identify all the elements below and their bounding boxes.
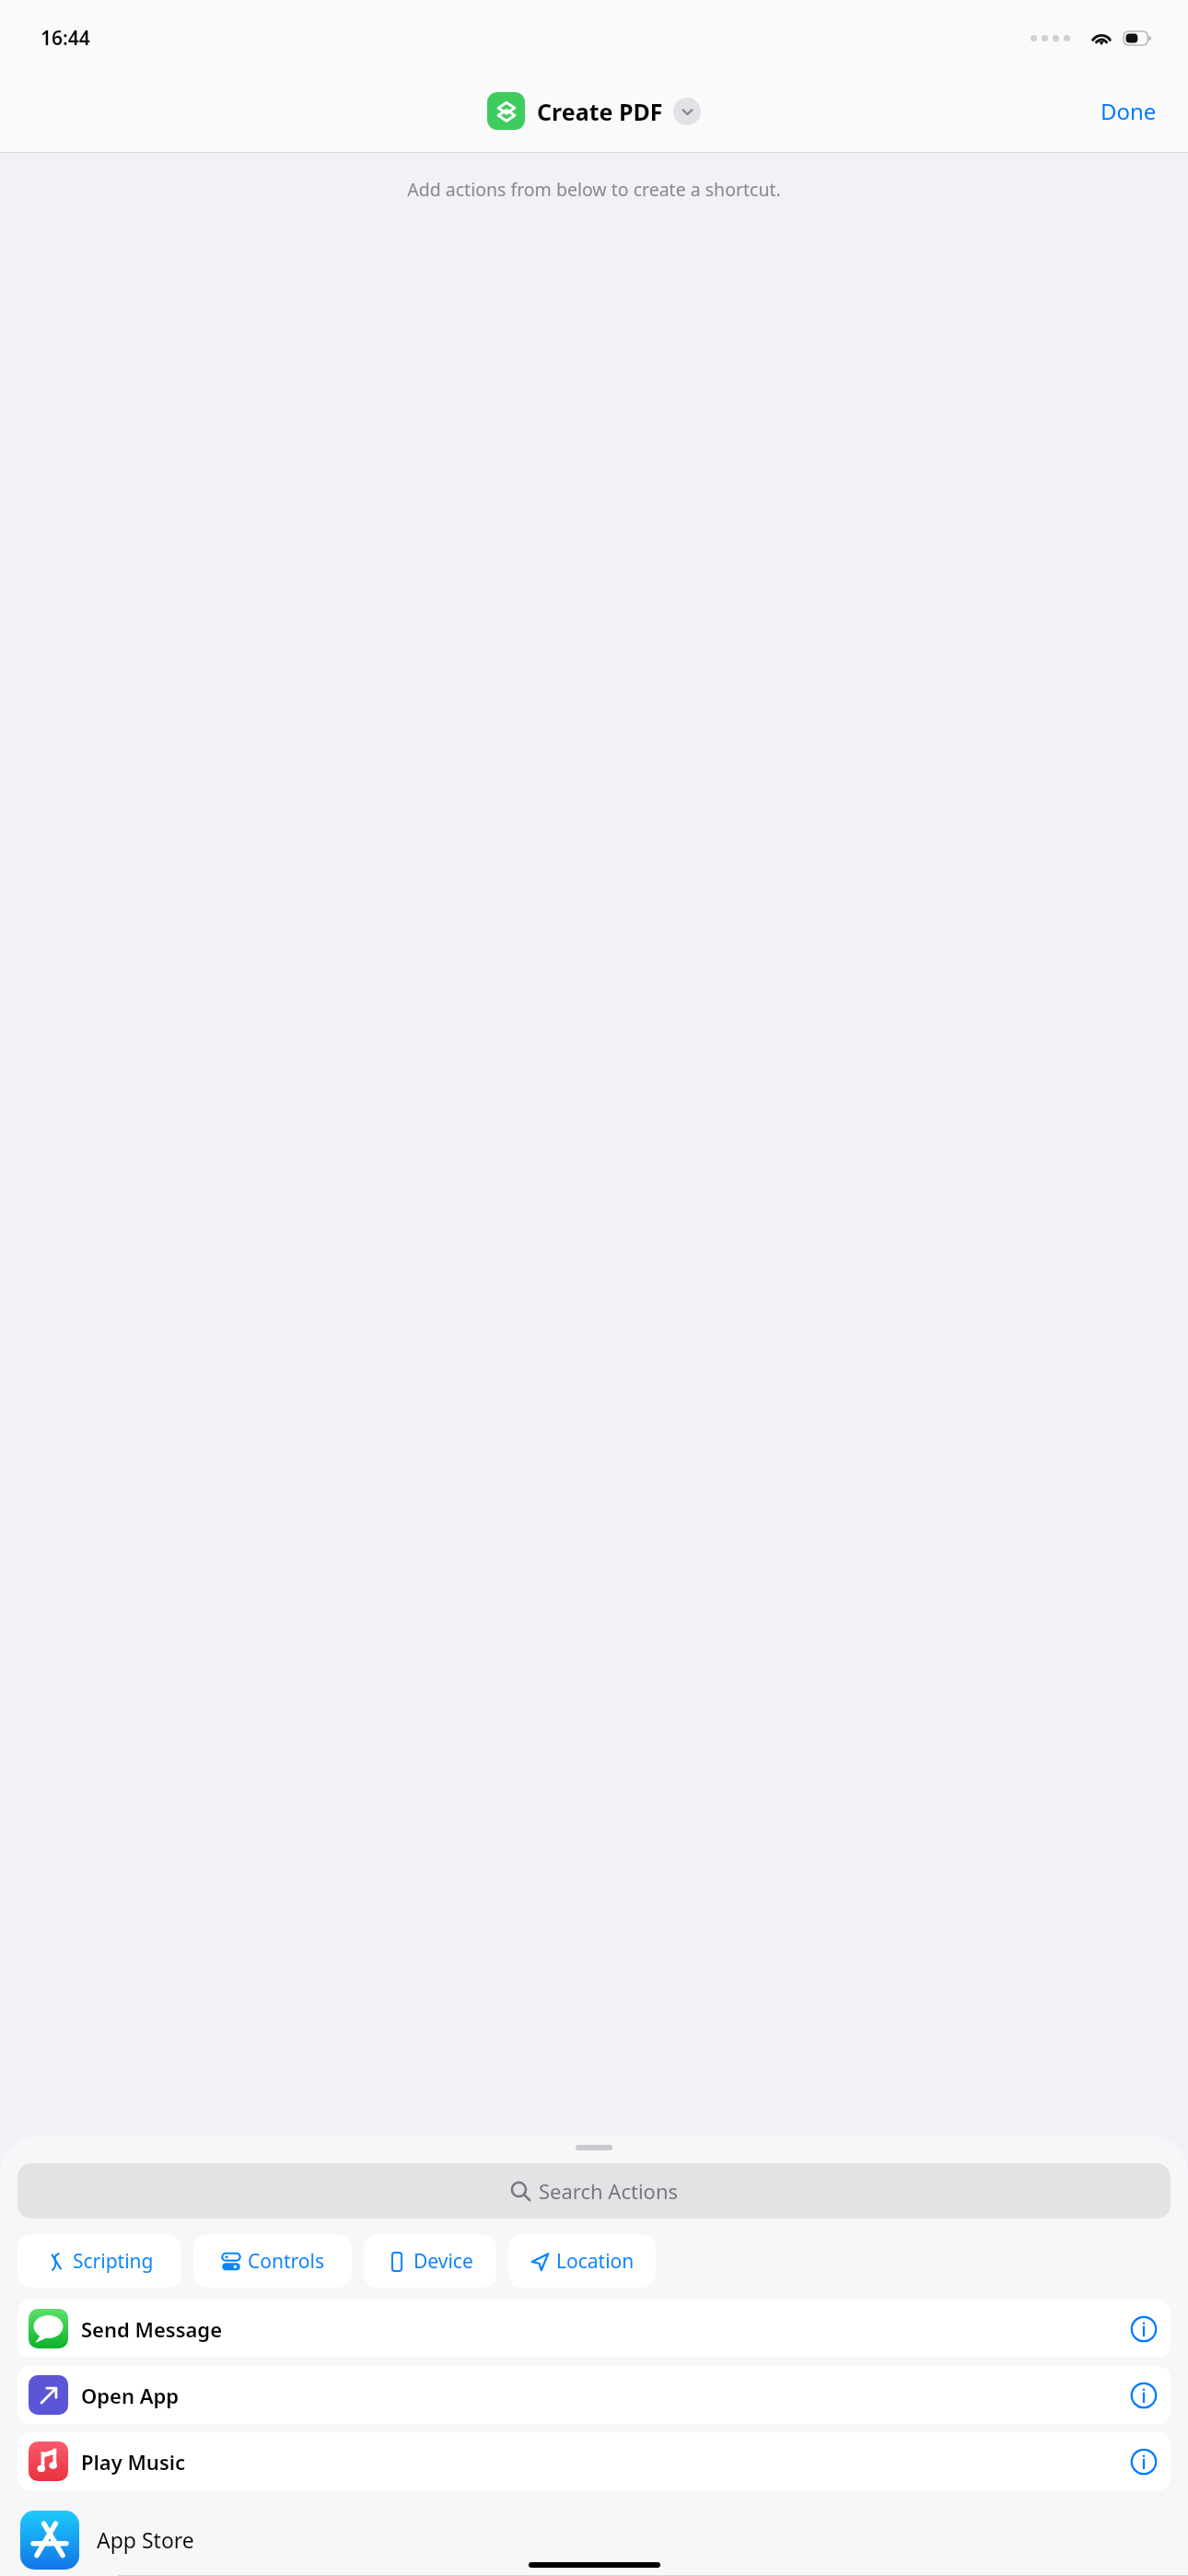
staticText: App Store bbox=[97, 2525, 194, 2554]
staticText: Location bbox=[556, 2248, 635, 2275]
staticText: Open App bbox=[81, 2382, 180, 2409]
button[interactable]: Search Actions bbox=[17, 2163, 1171, 2219]
staticText: Done bbox=[1101, 96, 1157, 126]
button[interactable]: About Send Message bbox=[1128, 2313, 1159, 2345]
button[interactable]: Shortcut options bbox=[673, 98, 701, 125]
button[interactable]: Send Message bbox=[17, 2300, 1171, 2358]
button[interactable]: About Play Music bbox=[1128, 2446, 1159, 2477]
button[interactable]: Controls bbox=[193, 2234, 352, 2288]
staticText: Search Actions bbox=[539, 2177, 679, 2205]
button[interactable]: Location bbox=[508, 2234, 656, 2288]
staticText: Play Music bbox=[81, 2448, 185, 2476]
staticText: Device bbox=[413, 2248, 473, 2275]
staticText: Scripting bbox=[73, 2248, 154, 2275]
button[interactable]: Shortcut icon bbox=[487, 92, 525, 130]
button[interactable]: Scripting bbox=[17, 2234, 181, 2288]
staticText: Send Message bbox=[81, 2315, 223, 2343]
button[interactable]: Open App bbox=[17, 2366, 1171, 2424]
staticText: Add actions from below to create a short… bbox=[22, 177, 1166, 202]
staticText: Create PDF bbox=[537, 96, 663, 127]
staticText: Controls bbox=[248, 2248, 324, 2275]
staticText: 16:44 bbox=[41, 25, 90, 52]
button[interactable]: Done bbox=[1069, 68, 1188, 153]
button[interactable]: Device bbox=[364, 2234, 496, 2288]
button[interactable]: Play Music bbox=[17, 2432, 1171, 2490]
button[interactable]: App Store bbox=[0, 2503, 1188, 2576]
button[interactable]: About Open App bbox=[1128, 2380, 1159, 2411]
